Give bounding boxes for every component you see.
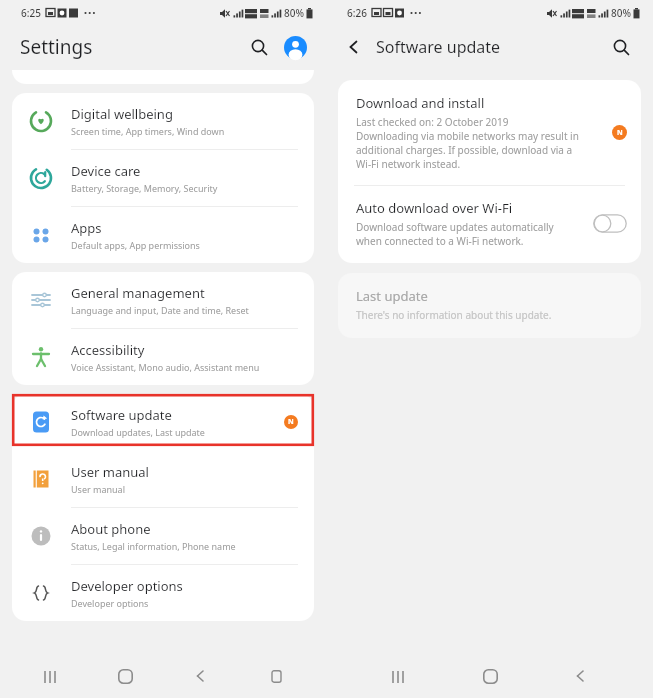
- button[interactable]: Last update: [338, 273, 641, 338]
- button[interactable]: Apps: [12, 207, 314, 263]
- staticText: Software update: [71, 406, 172, 424]
- staticText: Download and install: [356, 94, 485, 112]
- button[interactable]: Back: [561, 656, 601, 696]
- button[interactable]: Back: [338, 31, 370, 63]
- staticText: Battery, Storage, Memory, Security: [71, 182, 218, 194]
- staticText: Voice Assistant, Mono audio, Assistant m…: [71, 361, 260, 373]
- staticText: Device care: [71, 162, 141, 180]
- button[interactable]: Back: [181, 656, 221, 696]
- staticText: General management: [71, 284, 205, 302]
- button[interactable]: Recents: [30, 656, 70, 696]
- staticText: Accessibility: [71, 341, 145, 359]
- staticText: Software update: [376, 36, 501, 58]
- staticText: N: [288, 417, 294, 427]
- staticText: N: [617, 128, 623, 138]
- staticText: Last checked on: 2 October 2019 Download…: [356, 115, 579, 171]
- button[interactable]: About phone: [12, 508, 314, 565]
- staticText: Digital wellbeing: [71, 105, 173, 123]
- staticText: Settings: [20, 34, 93, 60]
- button[interactable]: Home: [470, 656, 510, 696]
- button[interactable]: Download and install: [338, 80, 641, 185]
- staticText: 6:26: [347, 6, 367, 20]
- button[interactable]: User manual: [12, 451, 314, 508]
- staticText: Developer options: [71, 577, 183, 595]
- staticText: Auto download over Wi-Fi: [356, 199, 513, 217]
- staticText: Apps: [71, 219, 102, 237]
- button[interactable]: Account: [278, 30, 312, 64]
- button[interactable]: Recents: [378, 656, 418, 696]
- staticText: User manual: [71, 463, 149, 481]
- staticText: 6:25: [21, 6, 41, 20]
- staticText: Download software updates automatically …: [356, 220, 554, 248]
- staticText: Developer options: [71, 597, 149, 609]
- button[interactable]: General management: [12, 272, 314, 329]
- staticText: 80%: [611, 6, 631, 20]
- button[interactable]: Developer options: [12, 565, 314, 621]
- staticText: Download updates, Last update: [71, 426, 205, 438]
- button[interactable]: Keyboard: [256, 656, 296, 696]
- staticText: Language and input, Date and time, Reset: [71, 304, 249, 316]
- staticText: 80%: [284, 6, 304, 20]
- button[interactable]: Auto download over Wi-Fi: [338, 186, 641, 263]
- staticText: Status, Legal information, Phone name: [71, 540, 236, 552]
- button[interactable]: Home: [105, 656, 145, 696]
- staticText: User manual: [71, 483, 125, 495]
- staticText: There's no information about this update…: [356, 308, 552, 322]
- staticText: About phone: [71, 520, 151, 538]
- button[interactable]: Accessibility: [12, 329, 314, 385]
- staticText: Screen time, App timers, Wind down: [71, 125, 225, 137]
- button[interactable]: Software update: [12, 394, 314, 450]
- button[interactable]: Search: [605, 31, 637, 63]
- button[interactable]: Device care: [12, 150, 314, 207]
- button[interactable]: Search: [242, 30, 276, 64]
- button[interactable]: Auto download over Wi-Fi toggle: [593, 214, 627, 233]
- staticText: Last update: [356, 287, 428, 305]
- button[interactable]: Digital wellbeing: [12, 93, 314, 150]
- staticText: Default apps, App permissions: [71, 239, 200, 251]
